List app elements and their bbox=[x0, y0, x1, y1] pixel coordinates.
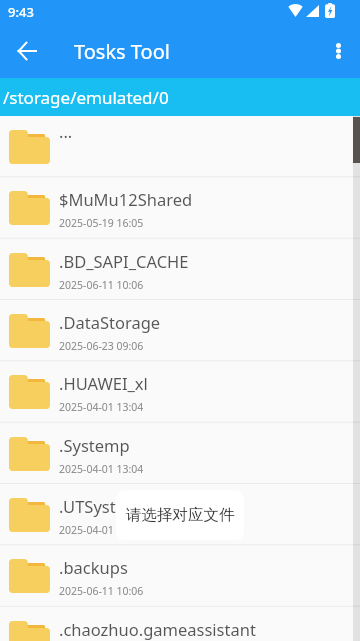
staticText: 9:43 bbox=[8, 3, 34, 21]
staticText: Tosks Tool bbox=[74, 38, 170, 65]
button[interactable]: .BD_SAPI_CACHE bbox=[0, 239, 360, 300]
staticText: 2025-06-11 10:06 bbox=[59, 584, 144, 598]
staticText: 2025-05-19 16:05 bbox=[59, 216, 144, 230]
button[interactable]: Back bbox=[4, 28, 50, 74]
button[interactable]: .backups bbox=[0, 545, 360, 606]
staticText: .BD_SAPI_CACHE bbox=[59, 250, 189, 272]
staticText: .Systemp bbox=[59, 434, 130, 456]
button[interactable]: .Systemp bbox=[0, 423, 360, 484]
button[interactable]: More options bbox=[314, 28, 360, 74]
staticText: 2025-06-11 10:06 bbox=[59, 278, 144, 292]
staticText: .UTSystemConfig bbox=[59, 495, 192, 517]
button[interactable]: .UTSystemConfig bbox=[0, 484, 360, 545]
button[interactable]: /storage/emulated/0 bbox=[0, 78, 360, 116]
staticText: 2025-06-23 09:06 bbox=[59, 339, 144, 353]
staticText: .HUAWEI_xl bbox=[59, 372, 148, 394]
button[interactable]: ... bbox=[0, 116, 360, 177]
staticText: $MuMu12Shared bbox=[59, 188, 193, 210]
staticText: 请选择对应文件 bbox=[126, 505, 235, 525]
staticText: 2025-04-01 13:04 bbox=[59, 400, 144, 414]
button[interactable]: .HUAWEI_xl bbox=[0, 361, 360, 422]
button[interactable]: .DataStorage bbox=[0, 300, 360, 361]
staticText: .DataStorage bbox=[59, 311, 161, 333]
staticText: 2025-04-01 13:04 bbox=[59, 462, 144, 476]
staticText: /storage/emulated/0 bbox=[3, 86, 169, 109]
button[interactable]: .chaozhuo.gameassistant bbox=[0, 607, 360, 641]
staticText: .backups bbox=[59, 556, 128, 578]
staticText: 2025-04-01 13:04 bbox=[59, 523, 144, 537]
button[interactable]: $MuMu12Shared bbox=[0, 177, 360, 238]
staticText: ... bbox=[59, 120, 73, 142]
staticText: .chaozhuo.gameassistant bbox=[59, 618, 256, 640]
